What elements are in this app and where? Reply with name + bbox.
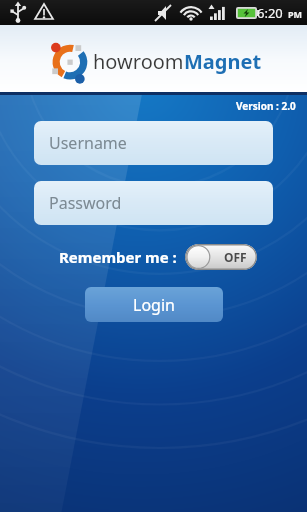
staticText: 6:20 <box>257 4 283 22</box>
staticText: Remember me : <box>59 247 177 267</box>
staticText: Username <box>49 132 127 154</box>
staticText: PM <box>288 8 303 20</box>
button[interactable]: Remember me toggle, off <box>185 244 257 270</box>
staticText: Login <box>133 294 175 316</box>
staticText: OFF <box>224 249 247 265</box>
button[interactable]: Username <box>34 121 273 165</box>
button[interactable]: Login <box>85 287 223 322</box>
staticText: Version : 2.0 <box>236 99 296 113</box>
button[interactable]: Password <box>34 181 273 225</box>
staticText: howroom <box>93 48 184 75</box>
staticText: Magnet <box>184 48 262 75</box>
staticText: Password <box>49 192 122 214</box>
